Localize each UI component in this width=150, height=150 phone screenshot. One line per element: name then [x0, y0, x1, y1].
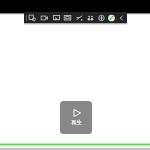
button[interactable]: Annotate — [73, 12, 85, 23]
staticText: 再生 — [71, 119, 82, 126]
button[interactable]: Share screen — [50, 12, 62, 23]
button[interactable]: Reactions — [96, 12, 106, 23]
button[interactable]: Participants — [85, 12, 96, 23]
button[interactable]: 再生 — [60, 101, 92, 134]
button[interactable]: Screen options — [27, 12, 38, 23]
button[interactable]: Record — [106, 12, 117, 23]
button[interactable]: Fit to screen — [62, 12, 73, 23]
button[interactable]: Camera — [38, 12, 50, 23]
button[interactable]: Collapse — [117, 12, 126, 23]
